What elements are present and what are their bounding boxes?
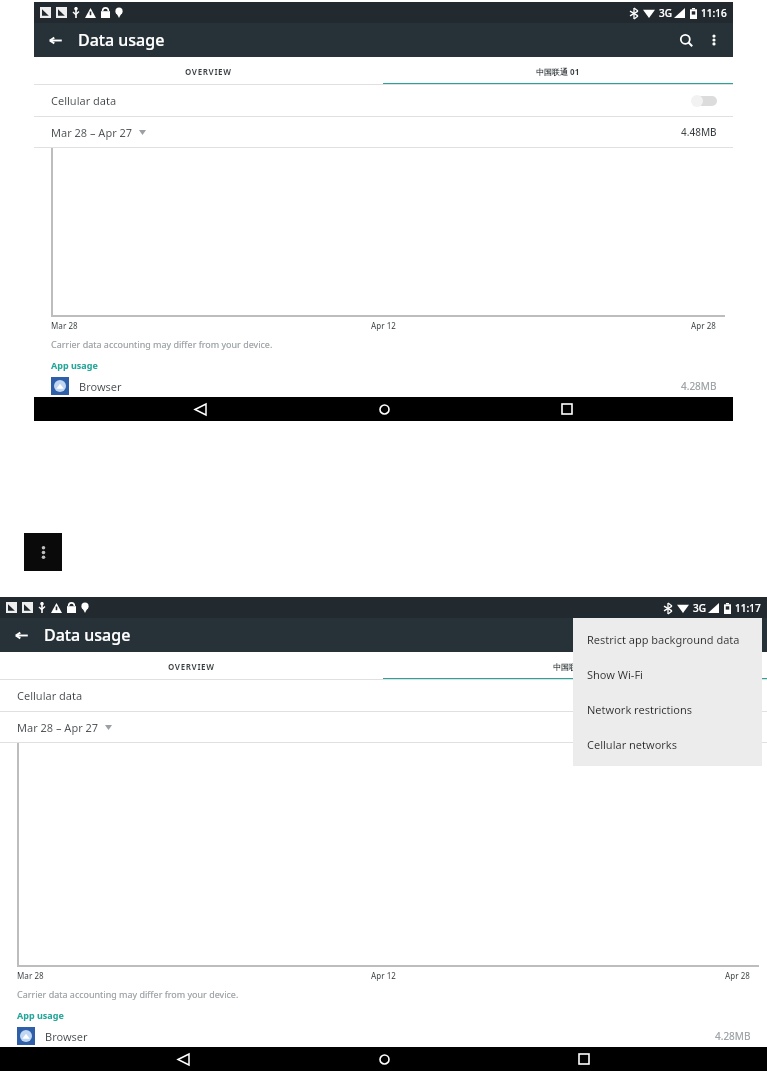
button[interactable]: Mar 28 – Apr 27	[51, 125, 146, 140]
button[interactable]: More options	[24, 533, 62, 571]
staticText: 4.48MB	[681, 125, 717, 139]
staticText: OVERVIEW	[185, 66, 232, 77]
staticText: App usage	[17, 1009, 64, 1021]
button[interactable]: More options	[735, 622, 761, 648]
button[interactable]: More options	[701, 27, 727, 53]
staticText: Data usage	[44, 624, 131, 646]
button[interactable]: Recents	[567, 1047, 601, 1071]
button[interactable]: Network restrictions	[573, 692, 762, 727]
staticText: Restrict app background data	[587, 632, 740, 647]
button[interactable]: App usage	[0, 1005, 767, 1025]
button[interactable]: App usage	[34, 355, 733, 375]
button[interactable]: Back	[166, 1047, 200, 1071]
staticText: Carrier data accounting may differ from …	[51, 338, 273, 350]
staticText: Apr 12	[371, 320, 396, 331]
staticText: Apr 28	[691, 320, 716, 331]
staticText: Apr 12	[371, 970, 396, 981]
button[interactable]: Show Wi-Fi	[573, 657, 762, 692]
button[interactable]: Restrict app background data	[573, 622, 762, 657]
button[interactable]: Browser	[34, 375, 733, 397]
staticText: Network restrictions	[587, 702, 693, 717]
button[interactable]: Home	[367, 397, 401, 421]
staticText: Mar 28	[51, 320, 78, 331]
button[interactable]: 中国联通 01	[383, 652, 767, 680]
button[interactable]: Home	[367, 1047, 401, 1071]
button[interactable]: Back	[6, 620, 36, 650]
button[interactable]: OVERVIEW	[0, 652, 383, 680]
staticText: 4.28MB	[715, 1029, 751, 1043]
button[interactable]: Search	[705, 620, 735, 650]
staticText: Mar 28 – Apr 27	[17, 720, 99, 735]
button[interactable]: 中国联通 01	[383, 57, 733, 85]
staticText: 11:16	[701, 6, 727, 20]
button[interactable]: Back	[183, 397, 217, 421]
staticText: App usage	[51, 359, 98, 371]
button[interactable]: Cellular data	[34, 85, 733, 116]
staticText: 3G	[659, 6, 672, 20]
staticText: Carrier data accounting may differ from …	[17, 988, 239, 1000]
button[interactable]: Recents	[550, 397, 584, 421]
staticText: Mar 28 – Apr 27	[51, 125, 133, 140]
staticText: 11:17	[735, 601, 761, 615]
button[interactable]: Search	[671, 25, 701, 55]
staticText: 中国联通 01	[536, 66, 580, 77]
staticText: Mar 28	[17, 970, 44, 981]
button[interactable]: Browser	[0, 1025, 767, 1047]
staticText: Data usage	[78, 29, 165, 51]
staticText: 3G	[693, 601, 706, 615]
staticText: Browser	[79, 379, 122, 394]
staticText: Cellular data	[51, 93, 117, 108]
button[interactable]: OVERVIEW	[34, 57, 383, 85]
staticText: Apr 28	[725, 970, 750, 981]
button[interactable]: Back	[40, 25, 70, 55]
staticText: Cellular data	[17, 688, 83, 703]
button[interactable]: Mar 28 – Apr 27	[17, 720, 112, 735]
staticText: Cellular networks	[587, 737, 678, 752]
staticText: 中国联通 01	[553, 661, 597, 672]
staticText: Show Wi-Fi	[587, 667, 643, 682]
staticText: Browser	[45, 1029, 88, 1044]
staticText: 4.28MB	[681, 379, 717, 393]
button[interactable]: Cellular networks	[573, 727, 762, 762]
button[interactable]: Cellular data	[0, 680, 767, 711]
staticText: OVERVIEW	[168, 661, 215, 672]
